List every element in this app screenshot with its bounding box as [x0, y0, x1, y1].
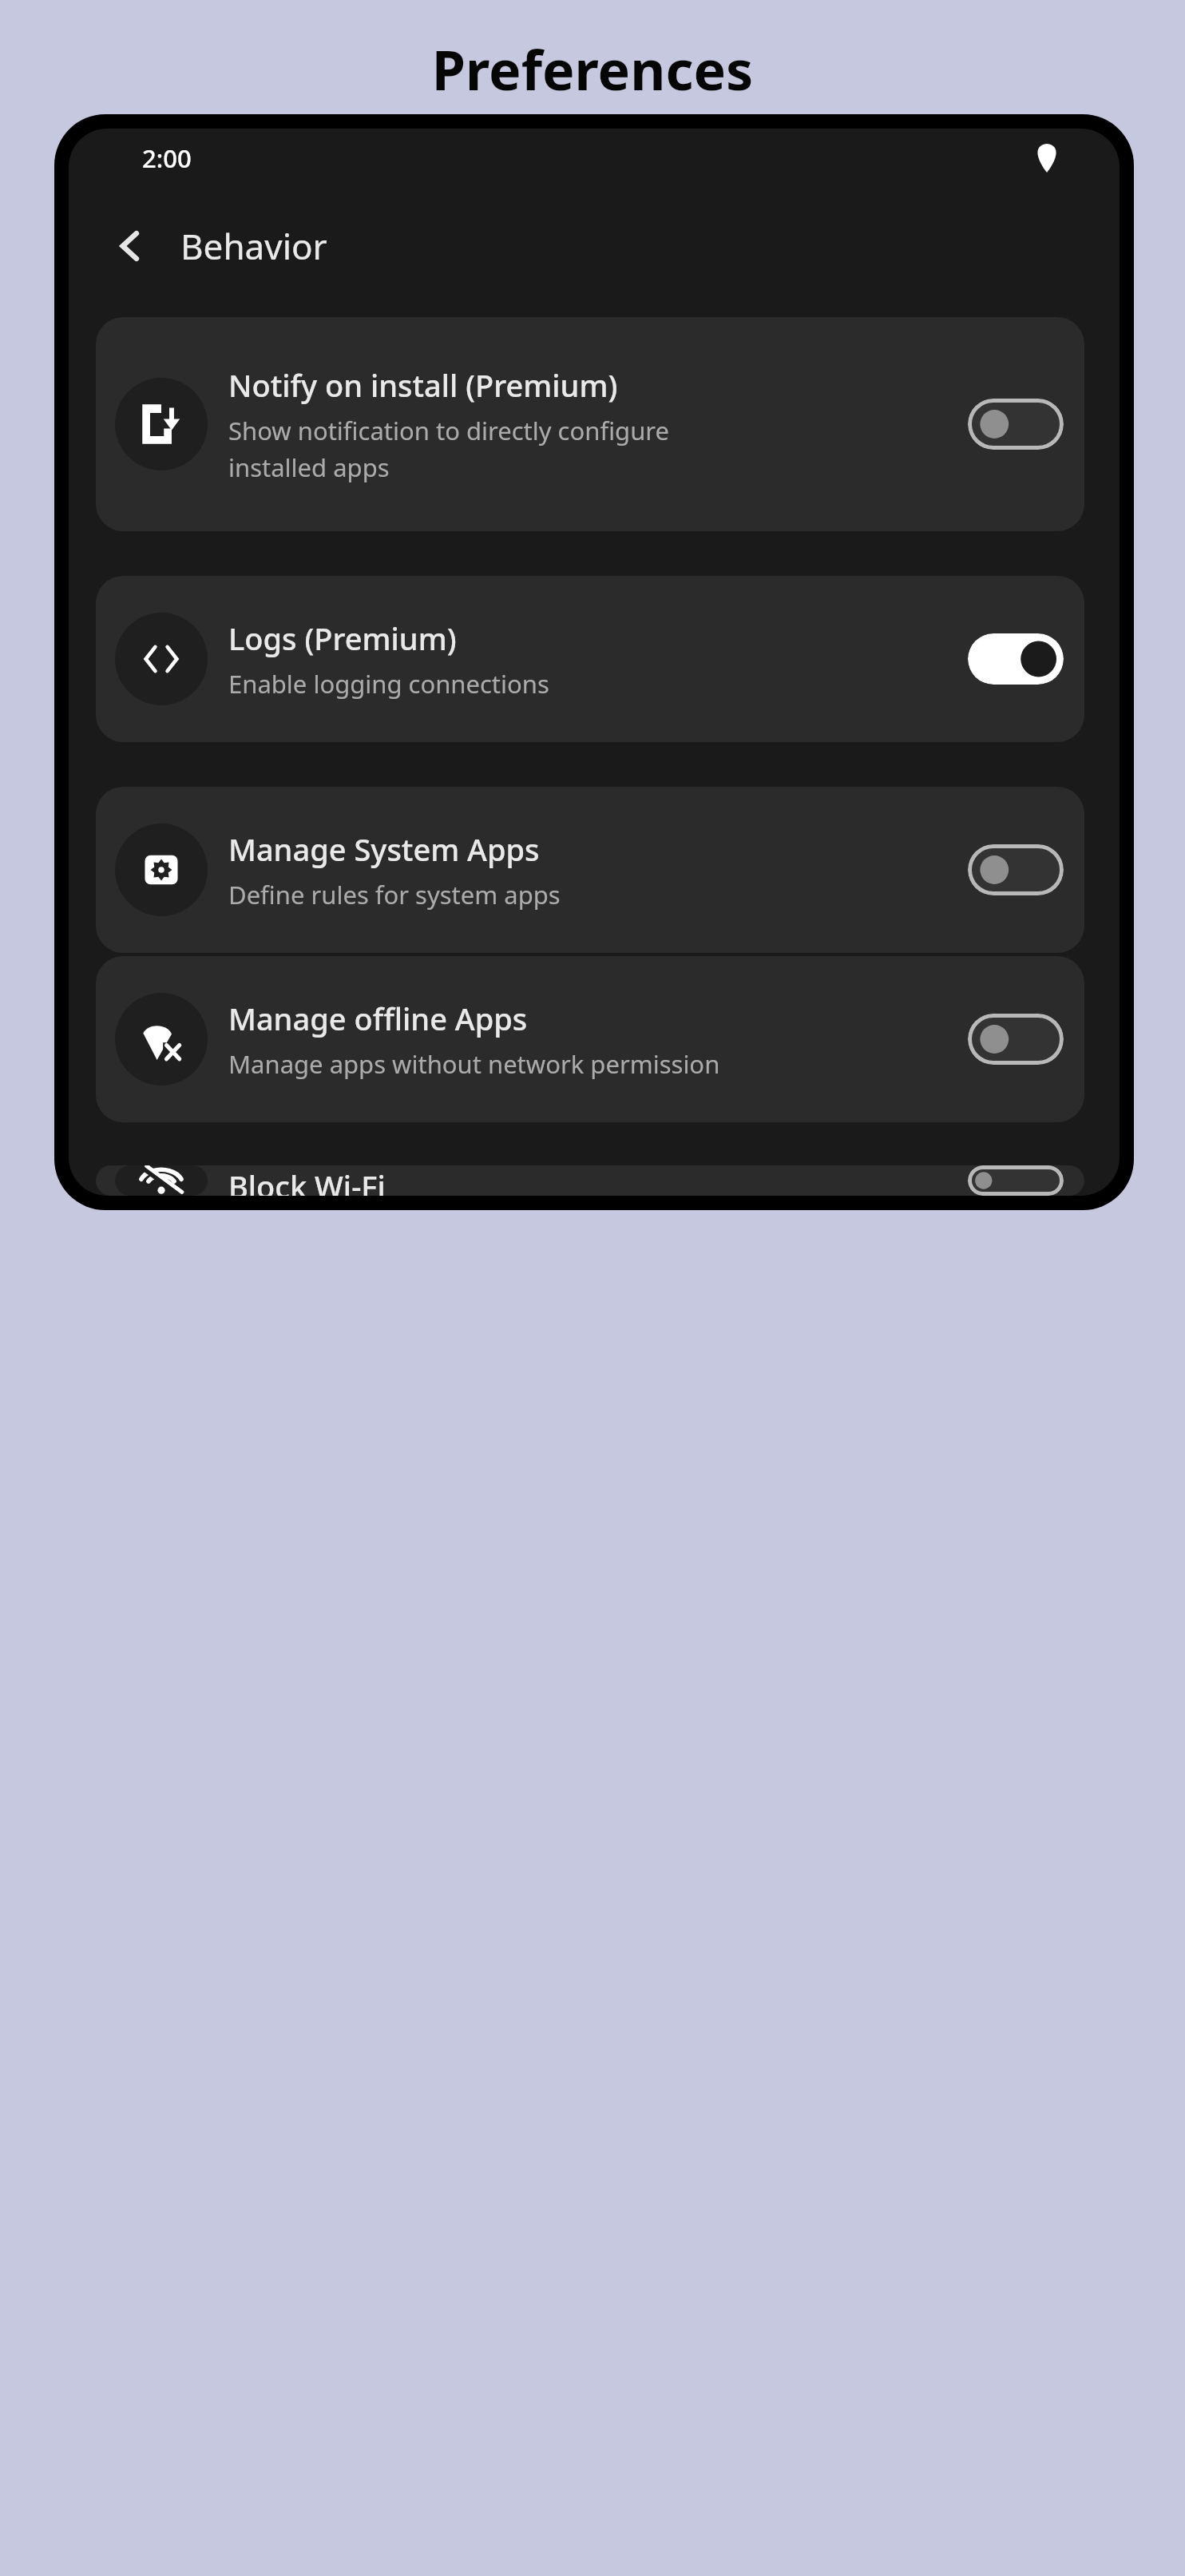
- button[interactable]: Manage System Apps: [96, 787, 1084, 953]
- staticText: Block Wi-Fi: [228, 1165, 386, 1196]
- staticText: Manage offline Apps: [228, 998, 528, 1039]
- staticText: Define rules for system apps: [228, 878, 561, 911]
- staticText: Manage apps without network permission: [228, 1047, 720, 1081]
- button[interactable]: Disabled: [968, 1165, 1064, 1196]
- button[interactable]: Disabled: [968, 844, 1064, 895]
- button[interactable]: Block Wi-Fi: [96, 1165, 1084, 1196]
- staticText: 2:00: [142, 141, 192, 175]
- staticText: Behavior: [180, 222, 327, 270]
- button[interactable]: Disabled: [968, 1014, 1064, 1065]
- staticText: Logs (Premium): [228, 617, 457, 659]
- staticText: Manage System Apps: [228, 828, 540, 870]
- button[interactable]: Manage offline Apps: [96, 956, 1084, 1122]
- button[interactable]: Back: [94, 210, 166, 282]
- staticText: Notify on install (Premium): [228, 364, 618, 406]
- button[interactable]: Logs (Premium): [96, 576, 1084, 742]
- staticText: Enable logging connections: [228, 667, 549, 701]
- staticText: Show notification to directly configure …: [228, 414, 669, 484]
- button[interactable]: Notify on install (Premium): [96, 317, 1084, 531]
- staticText: Preferences: [0, 32, 1185, 106]
- button[interactable]: Disabled: [968, 399, 1064, 450]
- button[interactable]: Enabled: [968, 633, 1064, 685]
